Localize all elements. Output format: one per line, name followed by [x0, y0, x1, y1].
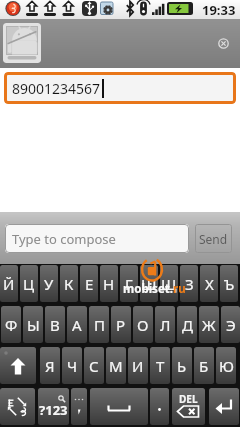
button[interactable]: Comma [71, 388, 87, 425]
staticText: П [94, 315, 105, 335]
staticText: А [72, 315, 82, 335]
button[interactable]: П [89, 306, 109, 343]
staticText: ru [173, 281, 186, 297]
staticText: Ъ [224, 274, 235, 294]
staticText: DEL [179, 392, 198, 406]
button[interactable]: В [45, 306, 65, 343]
button[interactable]: Ю [216, 347, 236, 384]
button[interactable]: Б [194, 347, 214, 384]
button[interactable]: К [60, 265, 78, 302]
button[interactable]: Contact photo [3, 23, 41, 63]
button[interactable]: 89001234567 [4, 72, 236, 104]
staticText: Ф [5, 315, 18, 335]
button[interactable]: Change language [0, 388, 35, 425]
staticText: mobiset. [123, 281, 173, 297]
button[interactable]: Г [120, 265, 138, 302]
staticText: О [137, 315, 149, 335]
button[interactable]: И [128, 347, 148, 384]
button[interactable]: Ц [20, 265, 38, 302]
staticText: К [64, 274, 74, 294]
staticText: Л [160, 315, 171, 335]
button[interactable]: С [84, 347, 104, 384]
staticText: Щ [161, 274, 177, 294]
staticText: Г [125, 274, 133, 294]
button[interactable]: Щ [160, 265, 178, 302]
button[interactable]: Л [155, 306, 175, 343]
button[interactable]: Ч [62, 347, 82, 384]
button[interactable]: Space [90, 388, 148, 425]
button[interactable]: О [133, 306, 153, 343]
staticText: Ж [202, 315, 216, 335]
staticText: М [109, 356, 123, 376]
button[interactable]: А [67, 306, 87, 343]
staticText: Ы [27, 315, 40, 335]
button[interactable]: Send [195, 224, 232, 253]
staticText: Х [205, 274, 214, 294]
button[interactable]: Т [150, 347, 170, 384]
button[interactable]: М [106, 347, 126, 384]
staticText: Send [199, 231, 228, 247]
button[interactable]: Type to compose [5, 224, 189, 253]
staticText: 89001234567 [12, 79, 101, 98]
button[interactable]: Е [80, 265, 98, 302]
button[interactable]: Н [100, 265, 118, 302]
button[interactable]: Delete [172, 388, 205, 425]
staticText: З [185, 274, 194, 294]
staticText: Type to compose [12, 230, 116, 248]
staticText: Ш [141, 274, 157, 294]
button[interactable]: Shift [0, 347, 36, 384]
staticText: И [132, 356, 144, 376]
staticText: ?123 [39, 401, 68, 419]
staticText: Е [85, 274, 94, 294]
staticText: Э [226, 315, 236, 335]
button[interactable]: З [180, 265, 198, 302]
staticText: Р [116, 315, 126, 335]
staticText: Н [103, 274, 115, 294]
staticText: Б [199, 356, 209, 376]
button[interactable]: Ф [1, 306, 21, 343]
button[interactable]: Ь [172, 347, 192, 384]
staticText: Ц [23, 274, 35, 294]
staticText: Д [182, 315, 193, 335]
button[interactable]: Period [150, 388, 169, 425]
staticText: С [89, 356, 99, 376]
button[interactable]: Enter [209, 388, 239, 425]
button[interactable]: ?123 [38, 388, 69, 425]
button[interactable]: Д [177, 306, 197, 343]
button[interactable]: Я [40, 347, 60, 384]
button[interactable]: Remove recipient [218, 38, 229, 49]
button[interactable]: Ш [140, 265, 158, 302]
button[interactable]: Х [200, 265, 218, 302]
button[interactable]: Ы [23, 306, 43, 343]
staticText: Я [45, 356, 55, 376]
staticText: Й [3, 274, 15, 294]
staticText: 19:33 [202, 1, 236, 19]
staticText: Ч [67, 356, 78, 376]
staticText: Ь [177, 356, 187, 376]
staticText: Ю [219, 356, 234, 376]
button[interactable]: Ж [199, 306, 219, 343]
button[interactable]: Й [0, 265, 18, 302]
button[interactable]: Р [111, 306, 131, 343]
staticText: Т [156, 356, 165, 376]
button[interactable]: Э [221, 306, 240, 343]
staticText: В [50, 315, 60, 335]
button[interactable]: Ъ [220, 265, 238, 302]
staticText: У [44, 274, 54, 294]
button[interactable]: У [40, 265, 58, 302]
